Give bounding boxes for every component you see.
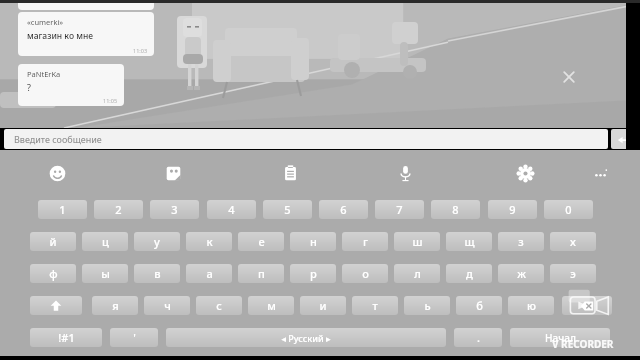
button[interactable]: Backspace <box>562 296 612 315</box>
staticText: к <box>206 234 213 249</box>
button[interactable]: у <box>134 232 180 251</box>
staticText: б <box>476 298 483 313</box>
staticText: 11:03 <box>133 47 148 54</box>
button[interactable]: Clipboard <box>275 158 305 188</box>
button[interactable]: о <box>342 264 388 283</box>
button[interactable]: м <box>248 296 294 315</box>
button[interactable]: Emoji <box>42 158 72 188</box>
button[interactable]: п <box>238 264 284 283</box>
button[interactable]: с <box>196 296 242 315</box>
button[interactable]: Voice input <box>390 158 420 188</box>
staticText: е <box>258 234 265 249</box>
staticText: «cumerki» <box>27 17 64 27</box>
staticText: PaNtErKa <box>27 69 61 79</box>
button[interactable]: PaNtErKa <box>18 64 124 106</box>
button[interactable]: ю <box>508 296 554 315</box>
button[interactable]: Next <box>510 328 610 347</box>
button[interactable]: з <box>498 232 544 251</box>
button[interactable]: Settings <box>510 158 540 188</box>
button[interactable]: н <box>290 232 336 251</box>
button[interactable]: ч <box>144 296 190 315</box>
button[interactable]: 6 <box>319 200 368 219</box>
button[interactable]: и <box>300 296 346 315</box>
button[interactable]: ' <box>110 328 158 347</box>
staticText: м <box>267 298 276 313</box>
staticText: 9 <box>509 202 516 217</box>
button[interactable]: д <box>446 264 492 283</box>
button[interactable]: «cumerki» <box>18 12 154 56</box>
button[interactable]: ф <box>30 264 76 283</box>
staticText: л <box>414 266 421 281</box>
button[interactable]: More options <box>585 158 615 188</box>
staticText: 11:05 <box>103 97 118 104</box>
button[interactable]: щ <box>446 232 492 251</box>
staticText: щ <box>464 234 475 249</box>
staticText: Введите сообщение <box>14 133 102 145</box>
staticText: 0 <box>565 202 572 217</box>
staticText: !#1 <box>58 330 75 345</box>
staticText: и <box>319 298 327 313</box>
button[interactable]: в <box>134 264 180 283</box>
staticText: ю <box>527 298 536 313</box>
staticText: х <box>570 234 576 249</box>
button[interactable]: б <box>456 296 502 315</box>
button[interactable]: ш <box>394 232 440 251</box>
staticText: 3 <box>171 202 178 217</box>
button[interactable]: ж <box>498 264 544 283</box>
staticText: й <box>49 234 57 249</box>
button[interactable]: 9 <box>488 200 537 219</box>
staticText: я <box>112 298 119 313</box>
staticText: . <box>477 330 480 345</box>
button[interactable]: ◂ Русский ▸ <box>166 328 446 347</box>
button[interactable]: э <box>550 264 596 283</box>
button[interactable]: Stickers <box>158 158 188 188</box>
button[interactable]: х <box>550 232 596 251</box>
button[interactable]: л <box>394 264 440 283</box>
button[interactable]: а <box>186 264 232 283</box>
button[interactable]: т <box>352 296 398 315</box>
button[interactable]: 7 <box>375 200 424 219</box>
button[interactable]: Введите сообщение <box>4 129 608 149</box>
staticText: г <box>363 234 368 249</box>
staticText: 8 <box>452 202 459 217</box>
button[interactable]: 3 <box>150 200 199 219</box>
button[interactable]: 1 <box>38 200 87 219</box>
button[interactable]: Send message <box>611 129 637 149</box>
staticText: 7 <box>396 202 403 217</box>
staticText: ч <box>164 298 171 313</box>
staticText: ь <box>424 298 431 313</box>
button[interactable]: к <box>186 232 232 251</box>
button[interactable]: Shift <box>30 296 82 315</box>
button[interactable]: я <box>92 296 138 315</box>
button[interactable]: Tools <box>558 66 580 88</box>
button[interactable]: ц <box>82 232 128 251</box>
button[interactable]: г <box>342 232 388 251</box>
staticText: ' <box>133 330 136 345</box>
button[interactable]: 5 <box>263 200 312 219</box>
button[interactable] <box>18 0 154 10</box>
staticText: 1 <box>59 202 66 217</box>
button[interactable]: !#1 <box>30 328 102 347</box>
staticText: у <box>154 234 160 249</box>
staticText: в <box>154 266 161 281</box>
button[interactable]: 8 <box>431 200 480 219</box>
staticText: з <box>518 234 524 249</box>
button[interactable]: е <box>238 232 284 251</box>
staticText: а <box>206 266 213 281</box>
staticText: п <box>258 266 265 281</box>
button[interactable]: р <box>290 264 336 283</box>
staticText: ц <box>102 234 109 249</box>
staticText: т <box>372 298 378 313</box>
button[interactable]: й <box>30 232 76 251</box>
staticText: ы <box>101 266 110 281</box>
staticText: э <box>570 266 576 281</box>
staticText: V RECORDER <box>552 337 614 351</box>
button[interactable]: ь <box>404 296 450 315</box>
staticText: магазин ко мне <box>27 30 94 42</box>
button[interactable]: 4 <box>207 200 256 219</box>
button[interactable]: 2 <box>94 200 143 219</box>
staticText: 5 <box>284 202 291 217</box>
button[interactable]: . <box>454 328 502 347</box>
button[interactable]: 0 <box>544 200 593 219</box>
button[interactable]: ы <box>82 264 128 283</box>
